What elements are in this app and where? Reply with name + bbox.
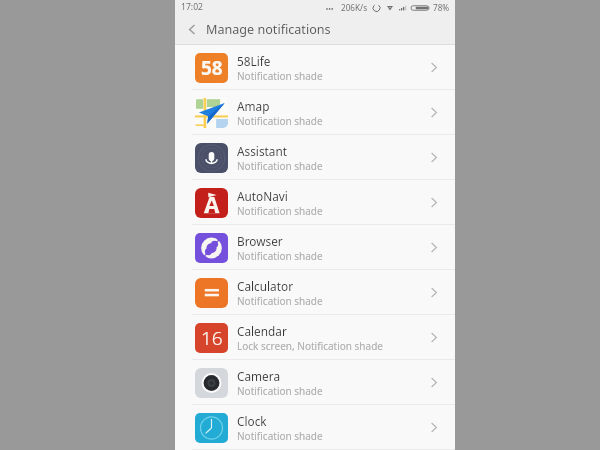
staticText: 78% — [433, 2, 450, 13]
staticText: Notification shade — [237, 204, 323, 218]
staticText: 17:02 — [181, 1, 203, 13]
staticText: 58Life — [237, 53, 271, 69]
button[interactable]: Calculator — [175, 270, 455, 315]
staticText: 16 — [201, 325, 223, 351]
button[interactable]: Assistant — [175, 135, 455, 180]
button[interactable]: Browser — [175, 225, 455, 270]
staticText: Notification shade — [237, 114, 323, 128]
staticText: Notification shade — [237, 249, 323, 263]
staticText: Lock screen, Notification shade — [237, 339, 383, 353]
staticText: Browser — [237, 233, 283, 249]
button[interactable]: 58 — [175, 45, 455, 90]
staticText: 206K/s — [341, 2, 368, 13]
staticText: Calculator — [237, 278, 294, 294]
button[interactable]: 16 — [175, 315, 455, 360]
button[interactable]: Clock — [175, 405, 455, 450]
staticText: Manage notifications — [206, 21, 331, 38]
staticText: Camera — [237, 368, 281, 384]
button[interactable]: Camera — [175, 360, 455, 405]
staticText: Calendar — [237, 323, 287, 339]
staticText: 58 — [201, 55, 223, 81]
staticText: Notification shade — [237, 294, 323, 308]
button[interactable]: Back — [175, 14, 208, 45]
button[interactable]: AutoNavi — [175, 180, 455, 225]
button[interactable]: Amap — [175, 90, 455, 135]
staticText: Notification shade — [237, 159, 323, 173]
staticText: Assistant — [237, 143, 287, 159]
staticText: Clock — [237, 413, 267, 429]
staticText: Notification shade — [237, 429, 323, 443]
staticText: AutoNavi — [237, 188, 288, 204]
staticText: Notification shade — [237, 69, 323, 83]
staticText: Notification shade — [237, 384, 323, 398]
staticText: Amap — [237, 98, 270, 114]
